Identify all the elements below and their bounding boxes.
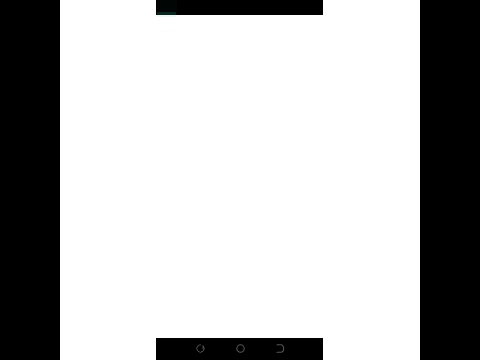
button[interactable]: App bar (156, 0, 323, 15)
button[interactable]: Home (232, 340, 248, 356)
button[interactable]: Back (192, 340, 208, 356)
button[interactable]: Recent apps (272, 340, 288, 356)
